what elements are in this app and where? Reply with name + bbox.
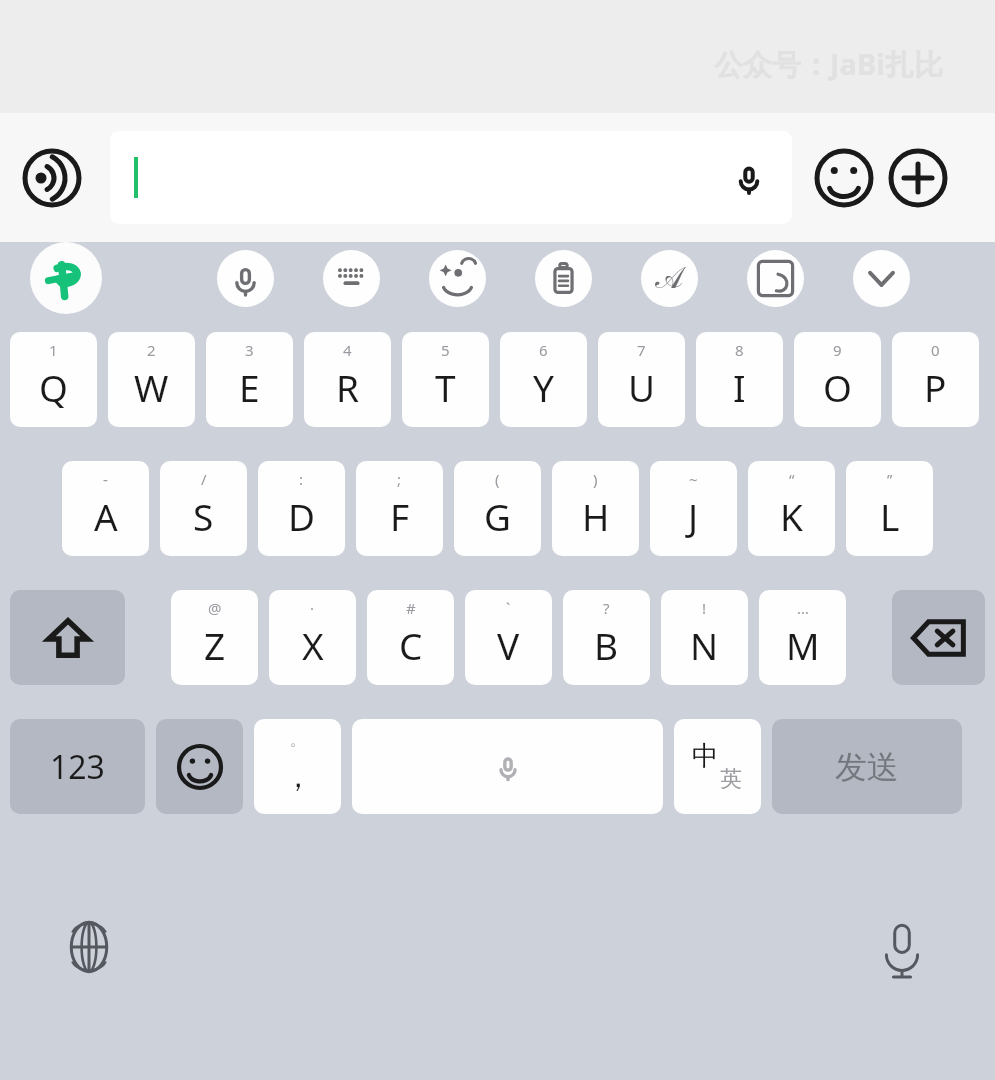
staticText: / bbox=[201, 469, 207, 489]
staticText: J bbox=[688, 491, 699, 541]
staticText: Z bbox=[204, 620, 226, 670]
button[interactable]: Input method settings bbox=[30, 242, 102, 314]
staticText: ~ bbox=[689, 469, 698, 489]
button[interactable]: ( bbox=[454, 461, 541, 556]
staticText: A bbox=[94, 491, 118, 541]
staticText: 1 bbox=[49, 340, 58, 360]
button[interactable]: Shift bbox=[10, 590, 125, 685]
button[interactable]: Space bbox=[352, 719, 663, 814]
staticText: B bbox=[594, 620, 619, 670]
button[interactable]: ! bbox=[661, 590, 748, 685]
button[interactable]: ~ bbox=[650, 461, 737, 556]
button[interactable]: 0 bbox=[892, 332, 979, 427]
button[interactable]: Voice message bbox=[110, 131, 792, 224]
button[interactable]: Voice input bbox=[22, 148, 82, 208]
staticText: 2 bbox=[147, 340, 156, 360]
button[interactable]: 发送 bbox=[772, 719, 962, 814]
button[interactable]: ` bbox=[465, 590, 552, 685]
button[interactable]: Font style bbox=[641, 250, 698, 307]
staticText: ” bbox=[887, 469, 893, 489]
staticText: P bbox=[924, 362, 947, 412]
button[interactable]: More options bbox=[887, 147, 949, 209]
button[interactable]: 。 bbox=[254, 719, 341, 814]
staticText: Y bbox=[533, 362, 554, 412]
staticText: ， bbox=[283, 758, 313, 796]
staticText: 5 bbox=[441, 340, 450, 360]
staticText: … bbox=[797, 598, 809, 618]
button[interactable]: AI assistant bbox=[429, 250, 486, 307]
staticText: 公众号：JaBi扎比 bbox=[714, 44, 943, 84]
staticText: M bbox=[786, 620, 820, 670]
button[interactable]: Switch language bbox=[58, 916, 120, 978]
staticText: : bbox=[299, 469, 304, 489]
button[interactable]: Voice input bbox=[871, 916, 933, 978]
staticText: W bbox=[134, 362, 169, 412]
staticText: N bbox=[690, 620, 719, 670]
staticText: 0 bbox=[931, 340, 940, 360]
button[interactable]: ? bbox=[563, 590, 650, 685]
button[interactable]: 5 bbox=[402, 332, 489, 427]
staticText: 英 bbox=[720, 765, 742, 793]
button[interactable]: · bbox=[269, 590, 356, 685]
staticText: 8 bbox=[735, 340, 744, 360]
staticText: 9 bbox=[833, 340, 842, 360]
staticText: - bbox=[103, 469, 108, 489]
staticText: I bbox=[733, 362, 746, 412]
button[interactable]: Hide keyboard bbox=[853, 250, 910, 307]
button[interactable]: Emoji bbox=[156, 719, 243, 814]
button[interactable]: ” bbox=[846, 461, 933, 556]
staticText: F bbox=[390, 491, 410, 541]
button[interactable]: 6 bbox=[500, 332, 587, 427]
staticText: # bbox=[406, 598, 416, 618]
button[interactable]: Backspace bbox=[892, 590, 985, 685]
button[interactable]: 2 bbox=[108, 332, 195, 427]
staticText: ` bbox=[506, 598, 511, 618]
staticText: ) bbox=[593, 469, 598, 489]
staticText: S bbox=[193, 491, 214, 541]
button[interactable]: Chinese English toggle bbox=[674, 719, 761, 814]
button[interactable]: ) bbox=[552, 461, 639, 556]
button[interactable]: @ bbox=[171, 590, 258, 685]
button[interactable]: Handwriting bbox=[747, 250, 804, 307]
staticText: 𝒜 bbox=[655, 264, 684, 294]
staticText: U bbox=[628, 362, 656, 412]
staticText: T bbox=[435, 362, 456, 412]
button[interactable]: Clipboard bbox=[535, 250, 592, 307]
staticText: C bbox=[399, 620, 423, 670]
staticText: 3 bbox=[245, 340, 254, 360]
staticText: X bbox=[302, 620, 324, 670]
button[interactable]: ; bbox=[356, 461, 443, 556]
button[interactable]: Voice input bbox=[217, 250, 274, 307]
staticText: ; bbox=[397, 469, 402, 489]
staticText: 6 bbox=[539, 340, 548, 360]
staticText: 123 bbox=[50, 745, 105, 789]
staticText: 发送 bbox=[835, 747, 899, 787]
button[interactable]: 9 bbox=[794, 332, 881, 427]
button[interactable]: Emoji bbox=[813, 147, 875, 209]
staticText: Q bbox=[39, 362, 68, 412]
staticText: ! bbox=[702, 598, 707, 618]
button[interactable]: # bbox=[367, 590, 454, 685]
staticText: O bbox=[823, 362, 852, 412]
button[interactable]: … bbox=[759, 590, 846, 685]
staticText: L bbox=[880, 491, 900, 541]
staticText: K bbox=[780, 491, 803, 541]
staticText: 7 bbox=[637, 340, 646, 360]
button[interactable]: “ bbox=[748, 461, 835, 556]
staticText: ? bbox=[603, 598, 610, 618]
button[interactable]: 123 bbox=[10, 719, 145, 814]
staticText: R bbox=[336, 362, 360, 412]
button[interactable]: 7 bbox=[598, 332, 685, 427]
staticText: 4 bbox=[343, 340, 352, 360]
button[interactable]: Voice message bbox=[728, 157, 770, 199]
button[interactable]: / bbox=[160, 461, 247, 556]
button[interactable]: - bbox=[62, 461, 149, 556]
button[interactable]: 1 bbox=[10, 332, 97, 427]
staticText: ( bbox=[495, 469, 500, 489]
button[interactable]: Keyboard layout bbox=[323, 250, 380, 307]
button[interactable]: 4 bbox=[304, 332, 391, 427]
button[interactable]: 3 bbox=[206, 332, 293, 427]
staticText: E bbox=[239, 362, 260, 412]
button[interactable]: : bbox=[258, 461, 345, 556]
button[interactable]: 8 bbox=[696, 332, 783, 427]
